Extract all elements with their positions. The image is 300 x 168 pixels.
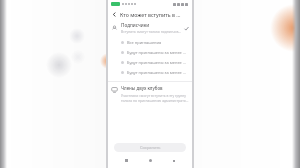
staticText: Члены двух клубов <box>121 85 163 91</box>
button[interactable]: Недавние <box>120 156 132 165</box>
button[interactable]: Главная <box>144 156 156 165</box>
button[interactable]: Назад <box>168 156 180 165</box>
staticText: Кто может вступить в группу <box>120 11 182 18</box>
staticText: Будут приглашены за менее 1 будет <box>127 50 188 55</box>
staticText: Участники смогут вступить в эту группу т… <box>121 93 189 103</box>
button[interactable]: Подписчики <box>111 21 189 35</box>
button[interactable]: Сохранить <box>114 143 186 152</box>
staticText: Подписчики <box>121 22 150 28</box>
staticText: Будут приглашены за менее 2 будет <box>127 60 188 65</box>
button[interactable]: Будут приглашены за менее 2 будет <box>108 57 192 67</box>
button[interactable]: Все приглашения <box>108 37 192 47</box>
button[interactable]: Члены двух клубов <box>111 85 189 103</box>
button[interactable]: Назад <box>108 8 120 20</box>
staticText: Будут приглашены за менее 15 будет <box>127 70 188 75</box>
staticText: Все приглашения <box>127 40 188 45</box>
button[interactable]: Назад <box>108 8 192 20</box>
staticText: Сохранить <box>140 145 161 150</box>
button[interactable]: Будут приглашены за менее 1 будет <box>108 47 192 57</box>
staticText: Вступить смогут только подписчики вашего… <box>121 29 182 34</box>
button[interactable]: Будут приглашены за менее 15 будет <box>108 67 192 77</box>
